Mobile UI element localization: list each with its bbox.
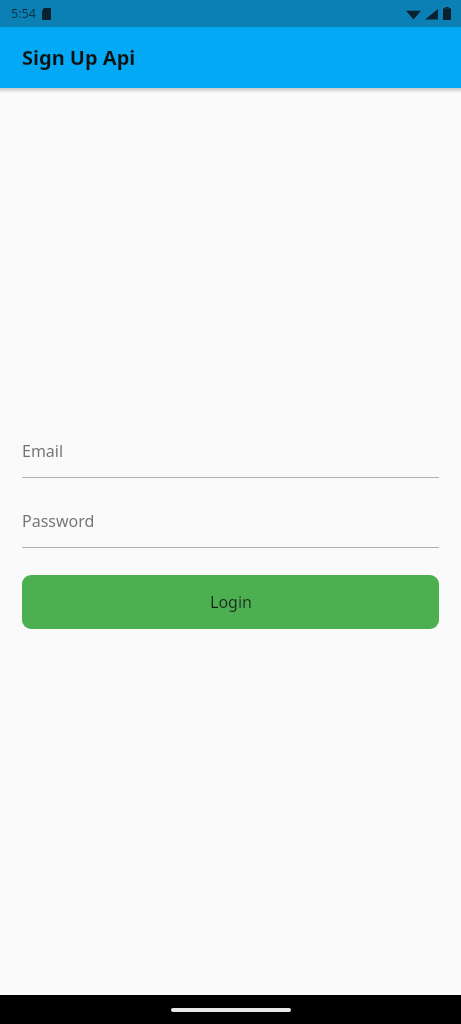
staticText: Email [22,440,64,462]
button[interactable]: Password [22,508,439,548]
button[interactable]: Email [22,438,439,478]
staticText: Login [210,591,252,613]
button[interactable]: Login [22,575,439,629]
staticText: Password [22,510,95,532]
staticText: Sign Up Api [22,44,136,71]
staticText: 5:54 [11,5,36,22]
